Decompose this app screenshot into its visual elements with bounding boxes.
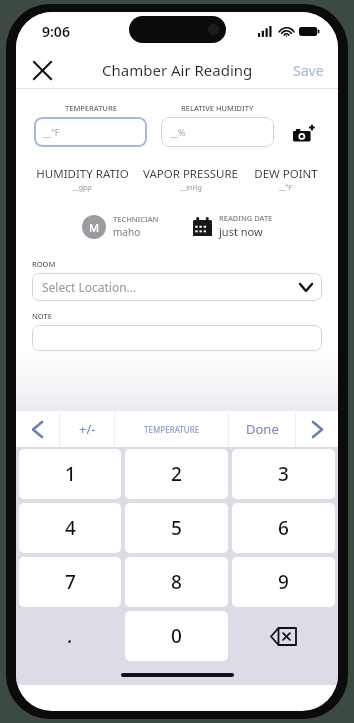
button[interactable]: 1 [19, 449, 121, 499]
staticText: NOTE [32, 311, 52, 321]
staticText: __°F [43, 126, 60, 138]
button[interactable]: Previous field [16, 411, 59, 447]
staticText: __gpp [72, 183, 92, 193]
button[interactable]: Close [24, 52, 60, 88]
staticText: 0 [171, 623, 182, 649]
button[interactable]: 2 [125, 449, 228, 499]
button[interactable]: Next field [296, 411, 338, 447]
button[interactable]: READING DATE [189, 209, 277, 243]
button[interactable]: M [78, 210, 163, 243]
staticText: __°F [279, 183, 292, 193]
button[interactable]: __% [161, 117, 274, 147]
staticText: __inHg [180, 183, 202, 193]
staticText: . [67, 623, 73, 649]
button[interactable]: 6 [232, 503, 335, 553]
staticText: 4 [65, 515, 76, 541]
staticText: TECHNICIAN [113, 214, 159, 224]
button[interactable]: +/- [60, 411, 114, 447]
staticText: 2 [171, 461, 182, 487]
staticText: __% [170, 126, 186, 138]
button[interactable]: Backspace [232, 611, 335, 661]
staticText: 7 [65, 569, 76, 595]
staticText: M [89, 220, 100, 235]
button[interactable]: Select Location... [32, 273, 322, 301]
staticText: ROOM [32, 259, 56, 269]
button[interactable]: 0 [125, 611, 228, 661]
staticText: 6 [278, 515, 289, 541]
staticText: TEMPERATURE [65, 103, 117, 113]
staticText: 9 [278, 569, 289, 595]
staticText: TEMPERATURE [144, 424, 200, 435]
staticText: Select Location... [42, 279, 137, 295]
button[interactable]: __°F [34, 117, 147, 147]
staticText: DEW POINT [254, 166, 318, 182]
button[interactable] [32, 325, 322, 351]
button[interactable]: Add photo [284, 115, 324, 155]
button[interactable]: TEMPERATURE [115, 411, 228, 447]
staticText: 5 [171, 515, 182, 541]
button[interactable]: 5 [125, 503, 228, 553]
staticText: 8 [171, 569, 182, 595]
staticText: 9:06 [42, 22, 70, 41]
staticText: just now [219, 224, 263, 239]
staticText: Chamber Air Reading [102, 60, 253, 80]
button[interactable]: 4 [19, 503, 121, 553]
staticText: VAPOR PRESSURE [143, 166, 238, 182]
staticText: maho [113, 225, 141, 239]
staticText: READING DATE [219, 213, 273, 223]
staticText: Save [293, 61, 324, 80]
button[interactable]: Done [229, 411, 295, 447]
staticText: Done [246, 420, 279, 438]
button[interactable]: 8 [125, 557, 228, 607]
staticText: HUMIDITY RATIO [36, 166, 129, 182]
button[interactable]: 7 [19, 557, 121, 607]
button[interactable]: 3 [232, 449, 335, 499]
button[interactable]: . [19, 611, 121, 661]
staticText: +/- [79, 420, 96, 438]
button[interactable]: 9 [232, 557, 335, 607]
button[interactable]: Save [285, 55, 332, 86]
staticText: 1 [65, 461, 76, 487]
staticText: 3 [278, 461, 289, 487]
staticText: RELATIVE HUMIDITY [181, 103, 254, 113]
